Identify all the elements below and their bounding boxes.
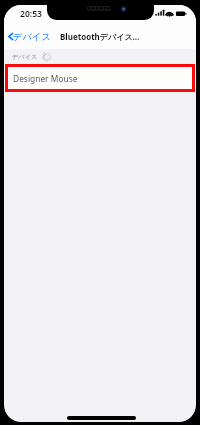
- staticText: デバイス: [13, 31, 52, 43]
- other: Back: [8, 33, 13, 40]
- button[interactable]: Designer Mouse: [4, 64, 196, 92]
- staticText: 20:53: [20, 8, 43, 20]
- staticText: Designer Mouse: [13, 73, 78, 84]
- staticText: Bluetoothデバイス...: [60, 31, 140, 42]
- staticText: デバイス: [12, 53, 38, 61]
- button[interactable]: Back: [7, 29, 55, 43]
